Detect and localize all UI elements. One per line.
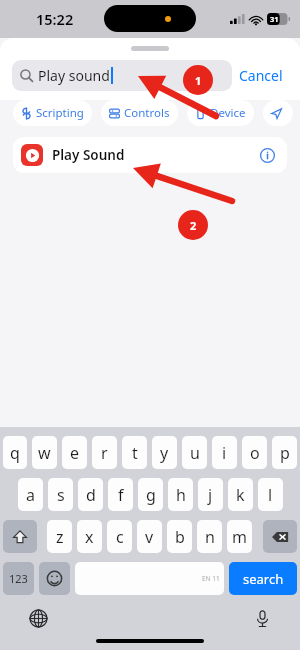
staticText: k bbox=[236, 484, 245, 506]
button[interactable]: Shift bbox=[3, 520, 37, 553]
staticText: x bbox=[85, 526, 94, 548]
staticText: h bbox=[176, 484, 186, 506]
staticText: c bbox=[116, 526, 124, 548]
staticText: search bbox=[243, 570, 284, 588]
staticText: u bbox=[190, 442, 200, 464]
staticText: Controls bbox=[124, 105, 170, 121]
staticText: Device bbox=[210, 105, 246, 121]
staticText: Scripting bbox=[36, 105, 84, 121]
button[interactable]: p bbox=[272, 436, 297, 469]
staticText: z bbox=[56, 526, 64, 548]
staticText: i bbox=[222, 442, 227, 464]
staticText: w bbox=[38, 442, 51, 464]
staticText: n bbox=[205, 526, 215, 548]
staticText: q bbox=[10, 442, 20, 464]
button[interactable]: EN 11 bbox=[75, 562, 224, 595]
button[interactable]: g bbox=[138, 478, 163, 511]
button[interactable]: m bbox=[227, 520, 252, 553]
staticText: o bbox=[250, 442, 260, 464]
button[interactable]: Device bbox=[187, 100, 254, 126]
button[interactable]: a bbox=[18, 478, 43, 511]
button[interactable]: u bbox=[182, 436, 207, 469]
staticText: 1 bbox=[195, 73, 202, 88]
button[interactable]: Play Sound bbox=[13, 137, 287, 173]
button[interactable]: j bbox=[198, 478, 223, 511]
staticText: l bbox=[268, 484, 273, 506]
button[interactable]: Cancel bbox=[232, 62, 290, 89]
button[interactable]: f bbox=[108, 478, 133, 511]
button[interactable]: Play sound bbox=[12, 60, 232, 91]
staticText: a bbox=[26, 484, 35, 506]
staticText: d bbox=[86, 484, 96, 506]
button[interactable]: d bbox=[78, 478, 103, 511]
button[interactable]: Sharing bbox=[263, 100, 293, 126]
button[interactable]: i bbox=[212, 436, 237, 469]
button[interactable]: search bbox=[229, 562, 297, 595]
staticText: Cancel bbox=[239, 66, 283, 85]
button[interactable]: q bbox=[3, 436, 27, 469]
staticText: f bbox=[118, 484, 124, 506]
staticText: 15:22 bbox=[36, 9, 74, 29]
staticText: 2 bbox=[190, 218, 197, 233]
staticText: v bbox=[145, 526, 154, 548]
button[interactable]: y bbox=[152, 436, 177, 469]
button[interactable]: z bbox=[47, 520, 72, 553]
button[interactable]: e bbox=[62, 436, 87, 469]
button[interactable]: Emoji bbox=[39, 562, 70, 595]
staticText: y bbox=[160, 442, 169, 464]
button[interactable]: Info bbox=[255, 143, 279, 167]
button[interactable]: w bbox=[32, 436, 57, 469]
staticText: b bbox=[175, 526, 185, 548]
button[interactable]: 123 bbox=[3, 562, 34, 595]
staticText: t bbox=[132, 442, 138, 464]
staticText: j bbox=[208, 484, 213, 506]
button[interactable]: r bbox=[92, 436, 117, 469]
staticText: e bbox=[70, 442, 80, 464]
button[interactable]: c bbox=[107, 520, 132, 553]
staticText: EN 11 bbox=[202, 574, 220, 583]
button[interactable]: Change keyboard bbox=[26, 606, 50, 630]
staticText: p bbox=[280, 442, 290, 464]
staticText: s bbox=[57, 484, 65, 506]
button[interactable]: b bbox=[167, 520, 192, 553]
button[interactable]: l bbox=[258, 478, 283, 511]
button[interactable]: k bbox=[228, 478, 253, 511]
button[interactable]: x bbox=[77, 520, 102, 553]
button[interactable]: Scripting bbox=[13, 100, 92, 126]
button[interactable]: Controls bbox=[101, 100, 178, 126]
staticText: g bbox=[146, 484, 156, 506]
button[interactable]: v bbox=[137, 520, 162, 553]
button[interactable]: s bbox=[48, 478, 73, 511]
staticText: Play sound bbox=[38, 66, 110, 85]
staticText: m bbox=[232, 526, 247, 548]
button[interactable]: t bbox=[122, 436, 147, 469]
button[interactable]: o bbox=[242, 436, 267, 469]
staticText: 31 bbox=[270, 14, 279, 24]
button[interactable]: n bbox=[197, 520, 222, 553]
button[interactable]: Backspace bbox=[263, 520, 297, 553]
staticText: Play Sound bbox=[52, 146, 125, 164]
staticText: r bbox=[101, 442, 108, 464]
staticText: 123 bbox=[9, 571, 28, 586]
button[interactable]: Dictate bbox=[250, 606, 274, 630]
button[interactable]: h bbox=[168, 478, 193, 511]
